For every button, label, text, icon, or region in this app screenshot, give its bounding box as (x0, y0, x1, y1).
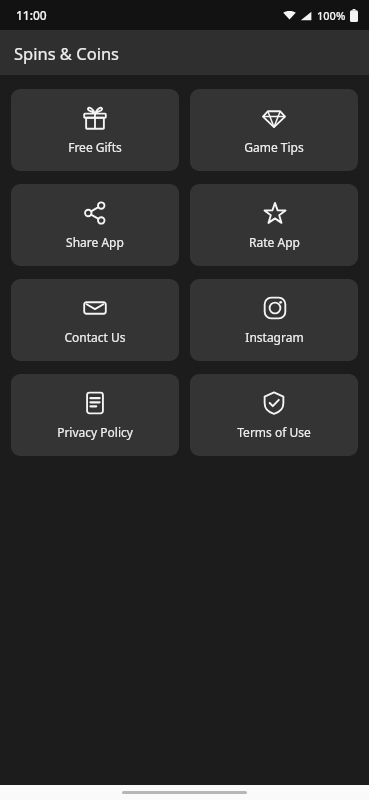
staticText: Contact Us (64, 329, 126, 345)
staticText: Spins & Coins (14, 42, 119, 64)
staticText: Rate App (249, 234, 300, 250)
button[interactable]: Instagram (190, 279, 358, 361)
button[interactable]: Share App (11, 184, 179, 266)
staticText: Free Gifts (68, 139, 122, 155)
button[interactable]: Terms of Use (190, 374, 358, 456)
staticText: Privacy Policy (57, 424, 133, 440)
button[interactable]: Game Tips (190, 89, 358, 171)
staticText: Instagram (245, 329, 304, 345)
staticText: 100% (317, 8, 346, 23)
staticText: Terms of Use (237, 424, 311, 440)
staticText: 11:00 (16, 7, 47, 23)
staticText: Game Tips (244, 139, 304, 155)
button[interactable]: Rate App (190, 184, 358, 266)
staticText: Share App (66, 234, 124, 250)
button[interactable]: Free Gifts (11, 89, 179, 171)
button[interactable]: Privacy Policy (11, 374, 179, 456)
button[interactable]: Contact Us (11, 279, 179, 361)
